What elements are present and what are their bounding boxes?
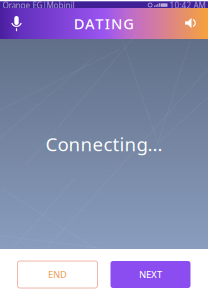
staticText: Orange EG|Mobinil [2,0,74,11]
staticText: Connecting... [45,132,162,156]
staticText: 10:42 AM [169,0,205,11]
button[interactable]: Microphone [0,8,33,39]
button[interactable]: Speaker [175,8,208,39]
staticText: DATING [74,14,134,33]
staticText: NEXT [139,268,162,281]
button[interactable]: NEXT [110,261,190,288]
staticText: END [48,268,67,281]
button[interactable]: END [17,261,97,288]
